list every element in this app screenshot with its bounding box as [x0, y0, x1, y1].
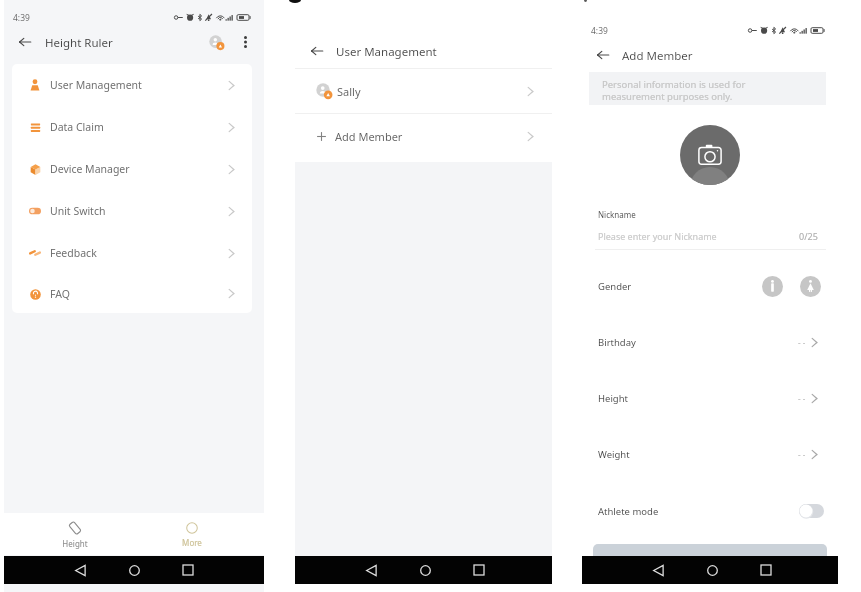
button[interactable]: Athlete mode	[582, 489, 838, 533]
button[interactable]: Back	[305, 39, 328, 62]
staticText: Athlete mode	[598, 505, 659, 518]
staticText: 0/25	[799, 230, 818, 242]
staticText: More	[182, 537, 202, 548]
staticText: - -	[798, 393, 806, 404]
button[interactable]: Recents	[754, 558, 778, 582]
staticText: Sally	[337, 84, 361, 99]
button[interactable]	[593, 544, 827, 558]
button[interactable]: Device Manager	[12, 148, 252, 190]
staticText: - -	[798, 337, 806, 348]
staticText: Weight	[598, 448, 630, 461]
button[interactable]: FAQ	[12, 274, 252, 313]
staticText: User Management	[50, 78, 142, 92]
button[interactable]: Back	[68, 558, 92, 582]
button[interactable]: Height	[45, 513, 105, 555]
staticText: Birthday	[598, 336, 636, 349]
staticText: Data Claim	[50, 120, 104, 134]
staticText: Device Manager	[50, 162, 130, 176]
staticText: Feedback	[50, 246, 97, 260]
staticText: FAQ	[50, 287, 70, 301]
staticText: Add Member	[622, 48, 693, 64]
button[interactable]: Recents	[467, 558, 491, 582]
staticText: - -	[798, 449, 806, 460]
button[interactable]: Sally	[295, 69, 552, 113]
staticText: 4:39	[13, 12, 30, 24]
staticText: Please enter your Nickname	[598, 230, 717, 242]
staticText: User Management	[336, 44, 437, 60]
staticText: Height	[598, 392, 628, 405]
button[interactable]: Home	[122, 558, 146, 582]
button[interactable]: Back	[13, 30, 37, 54]
button[interactable]: Male	[762, 276, 783, 297]
staticText: 4:39	[591, 25, 608, 37]
staticText: Height	[62, 538, 88, 549]
button[interactable]: Unit Switch	[12, 190, 252, 232]
staticText: Nickname	[598, 209, 636, 220]
button[interactable]: Recents	[176, 558, 200, 582]
button[interactable]: Profile	[203, 29, 229, 55]
button[interactable]: Back	[359, 558, 383, 582]
button[interactable]: User Management	[12, 64, 252, 106]
staticText: Height Ruler	[45, 35, 113, 51]
button[interactable]: Athlete mode	[799, 504, 824, 518]
button[interactable]: Home	[413, 558, 437, 582]
button[interactable]: Back	[592, 44, 614, 66]
button[interactable]: Add Member	[295, 114, 552, 158]
button[interactable]: Female	[800, 276, 821, 297]
button[interactable]: Add photo	[680, 125, 740, 185]
staticText: Unit Switch	[50, 204, 106, 218]
button[interactable]: Height	[582, 376, 838, 420]
button[interactable]: More	[162, 513, 222, 555]
button[interactable]: More options	[232, 29, 258, 55]
button[interactable]: Feedback	[12, 232, 252, 274]
staticText: Gender	[598, 280, 632, 293]
button[interactable]: Weight	[582, 432, 838, 476]
button[interactable]: Home	[700, 558, 724, 582]
staticText: Add Member	[335, 129, 403, 144]
staticText: Personal information is used for measure…	[602, 78, 746, 103]
button[interactable]: Back	[646, 558, 670, 582]
button[interactable]: Birthday	[582, 320, 838, 364]
button[interactable]: Gender	[582, 264, 838, 308]
button[interactable]: Data Claim	[12, 106, 252, 148]
